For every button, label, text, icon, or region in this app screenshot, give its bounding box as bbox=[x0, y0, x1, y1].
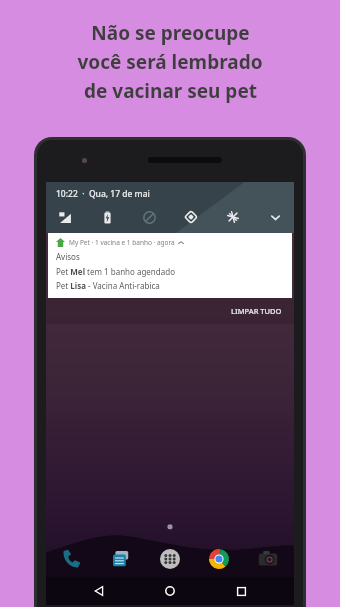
button[interactable]: Home bbox=[152, 577, 188, 605]
staticText: 10:22 · Qua, 17 de mai bbox=[56, 188, 150, 200]
button[interactable]: Auto-rotate bbox=[180, 206, 202, 228]
button[interactable]: Battery saver bbox=[96, 206, 118, 228]
button[interactable]: Camera bbox=[254, 545, 282, 573]
staticText: você será lembrado bbox=[77, 49, 263, 75]
button[interactable]: My Pet · 1 vacina e 1 banho · agora bbox=[48, 233, 292, 298]
staticText: de vacinar seu pet bbox=[84, 78, 257, 104]
staticText: Avisos bbox=[56, 251, 80, 262]
button[interactable]: Phone bbox=[58, 545, 86, 573]
button[interactable]: LIMPAR TUDO bbox=[227, 303, 286, 319]
button[interactable]: Messages bbox=[107, 545, 135, 573]
staticText: Não se preocupe bbox=[91, 20, 250, 46]
staticText: Pet Lisa - Vacina Anti-rabica bbox=[56, 280, 160, 291]
button[interactable]: All apps bbox=[156, 545, 184, 573]
button[interactable]: Flashlight bbox=[222, 206, 244, 228]
button[interactable]: Back bbox=[81, 577, 117, 605]
button[interactable]: Chrome bbox=[205, 545, 233, 573]
staticText: Pet Mel tem 1 banho agendado bbox=[56, 266, 175, 277]
staticText: LIMPAR TUDO bbox=[231, 306, 282, 316]
button[interactable]: Signal bbox=[54, 206, 76, 228]
staticText: My Pet · 1 vacina e 1 banho · agora bbox=[69, 238, 175, 247]
button[interactable]: Expand bbox=[264, 206, 286, 228]
button[interactable]: Do not disturb bbox=[138, 206, 160, 228]
button[interactable]: Recents bbox=[223, 577, 259, 605]
